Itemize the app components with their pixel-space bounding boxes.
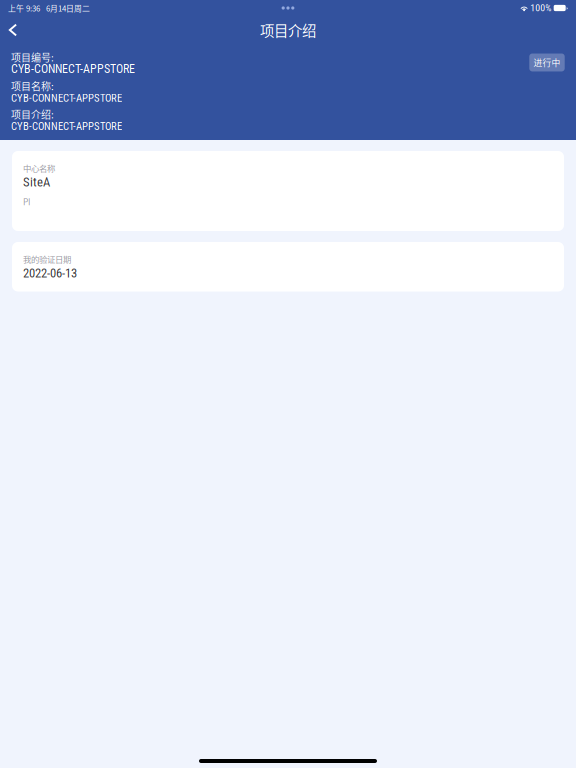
staticText: 中心名称 xyxy=(23,162,55,174)
staticText: 项目介绍: xyxy=(11,107,54,121)
staticText: CYB-CONNECT-APPSTORE xyxy=(11,120,122,133)
staticText: 项目编号: xyxy=(11,50,54,64)
staticText: CYB-CONNECT-APPSTORE xyxy=(11,92,122,104)
staticText: 100% xyxy=(530,2,551,14)
staticText: SiteA xyxy=(23,175,50,189)
staticText: 上午 9:36 6月14日周二 xyxy=(8,2,90,14)
button[interactable]: 进行中 xyxy=(529,53,565,71)
staticText: CYB-CONNECT-APPSTORE xyxy=(11,62,135,76)
staticText: PI xyxy=(23,195,30,208)
staticText: 进行中 xyxy=(533,56,560,69)
staticText: 项目介绍 xyxy=(260,20,316,40)
staticText: 我的验证日期 xyxy=(23,253,71,265)
button[interactable]: 返回 xyxy=(0,18,31,42)
staticText: 2022-06-13 xyxy=(23,266,77,280)
staticText: 项目名称: xyxy=(11,78,54,93)
